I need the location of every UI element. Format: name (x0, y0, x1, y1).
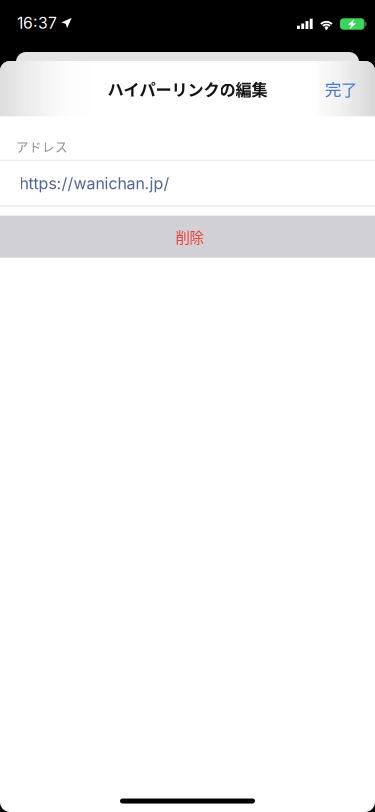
staticText: 16:37 (17, 13, 57, 32)
staticText: https://wanichan.jp/ (19, 174, 169, 193)
staticText: アドレス (16, 137, 68, 155)
staticText: ハイパーリンクの編集 (107, 77, 267, 100)
button[interactable]: 完了 (313, 66, 369, 111)
staticText: 完了 (325, 77, 357, 100)
staticText: 削除 (175, 226, 203, 247)
button[interactable]: https://wanichan.jp/ (0, 161, 375, 206)
button[interactable]: 削除 (0, 216, 375, 258)
